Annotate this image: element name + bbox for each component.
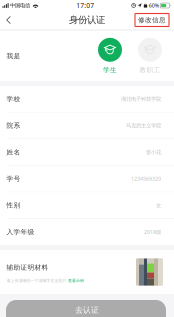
staticText: 学生 (103, 66, 117, 74)
button[interactable]: 学生 (94, 38, 126, 74)
button[interactable]: 修改信息 (135, 13, 174, 26)
button[interactable]: 教职工 (134, 38, 166, 74)
staticText: 教职工 (139, 66, 160, 74)
staticText: 去认证 (75, 305, 99, 315)
staticText: 学校 (7, 95, 21, 103)
staticText: 湖北电子科技学院 (121, 96, 161, 102)
staticText: 请上传清晰的一寸清晰学生证照片 (7, 278, 67, 283)
staticText: 60% (149, 2, 159, 9)
staticText: 修改信息 (138, 16, 166, 24)
staticText: 院系 (7, 121, 21, 130)
button[interactable]: Proof photo (136, 258, 163, 285)
staticText: 我是 (7, 52, 21, 60)
staticText: 性别 (7, 201, 21, 209)
staticText: 身份认证 (69, 14, 105, 26)
button[interactable]: 去认证 (0, 300, 174, 317)
staticText: 曾小花 (146, 149, 161, 155)
staticText: 17:07 (76, 1, 94, 10)
staticText: 马克思主义学院 (126, 122, 161, 129)
staticText: 1234569320 (131, 175, 161, 182)
staticText: 2018级 (144, 228, 161, 236)
staticText: 查看示例 (68, 278, 84, 283)
staticText: 女 (156, 202, 161, 209)
staticText: 姓名 (7, 148, 21, 156)
staticText: 辅助证明材料 (7, 263, 49, 272)
staticText: 学号 (7, 175, 21, 183)
staticText: 入学年级 (7, 228, 35, 236)
button[interactable]: Back (0, 11, 19, 29)
button[interactable]: 查看示例 (68, 278, 84, 283)
staticText: 中国电信 (10, 2, 30, 9)
